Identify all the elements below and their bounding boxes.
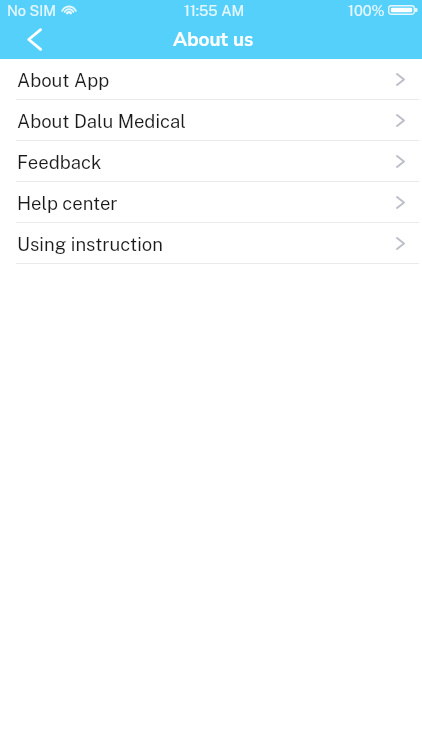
button[interactable]: About App <box>0 59 422 100</box>
staticText: About us <box>173 27 254 53</box>
button[interactable]: Back <box>0 20 69 59</box>
staticText: No SIM <box>7 2 57 19</box>
staticText: Feedback <box>17 151 102 173</box>
button[interactable]: Help center <box>0 182 422 223</box>
staticText: About App <box>17 69 110 91</box>
button[interactable]: Using instruction <box>0 223 422 264</box>
staticText: 100% <box>348 2 385 19</box>
staticText: About Dalu Medical <box>17 110 186 132</box>
staticText: 11:55 AM <box>184 2 245 19</box>
button[interactable]: About Dalu Medical <box>0 100 422 141</box>
staticText: Help center <box>17 192 118 214</box>
button[interactable]: Feedback <box>0 141 422 182</box>
staticText: Using instruction <box>17 233 163 255</box>
